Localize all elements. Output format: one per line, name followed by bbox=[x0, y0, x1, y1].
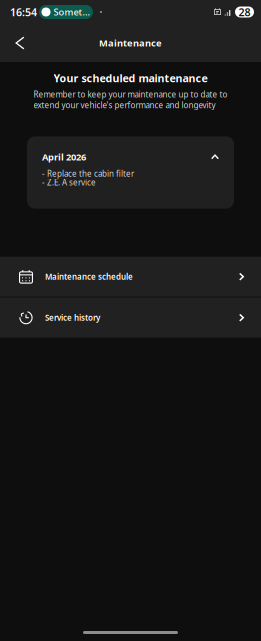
staticText: Service history bbox=[45, 312, 100, 323]
button[interactable]: Maintenance schedule bbox=[0, 257, 261, 297]
staticText: Somethin bbox=[53, 6, 91, 18]
staticText: April 2026 bbox=[42, 151, 86, 163]
button[interactable]: April 2026 bbox=[27, 136, 234, 209]
button[interactable]: Back bbox=[5, 28, 35, 58]
staticText: Maintenance schedule bbox=[45, 271, 133, 282]
staticText: 28 bbox=[238, 5, 250, 19]
staticText: Your scheduled maintenance bbox=[53, 71, 207, 85]
staticText: - Replace the cabin filter bbox=[42, 168, 134, 179]
staticText: 16:54 bbox=[10, 5, 37, 19]
staticText: - Z.E. A service bbox=[42, 177, 96, 188]
button[interactable]: Service history bbox=[0, 298, 261, 338]
staticText: Maintenance bbox=[99, 37, 162, 49]
staticText: Remember to keep your maintenance up to … bbox=[33, 89, 227, 110]
